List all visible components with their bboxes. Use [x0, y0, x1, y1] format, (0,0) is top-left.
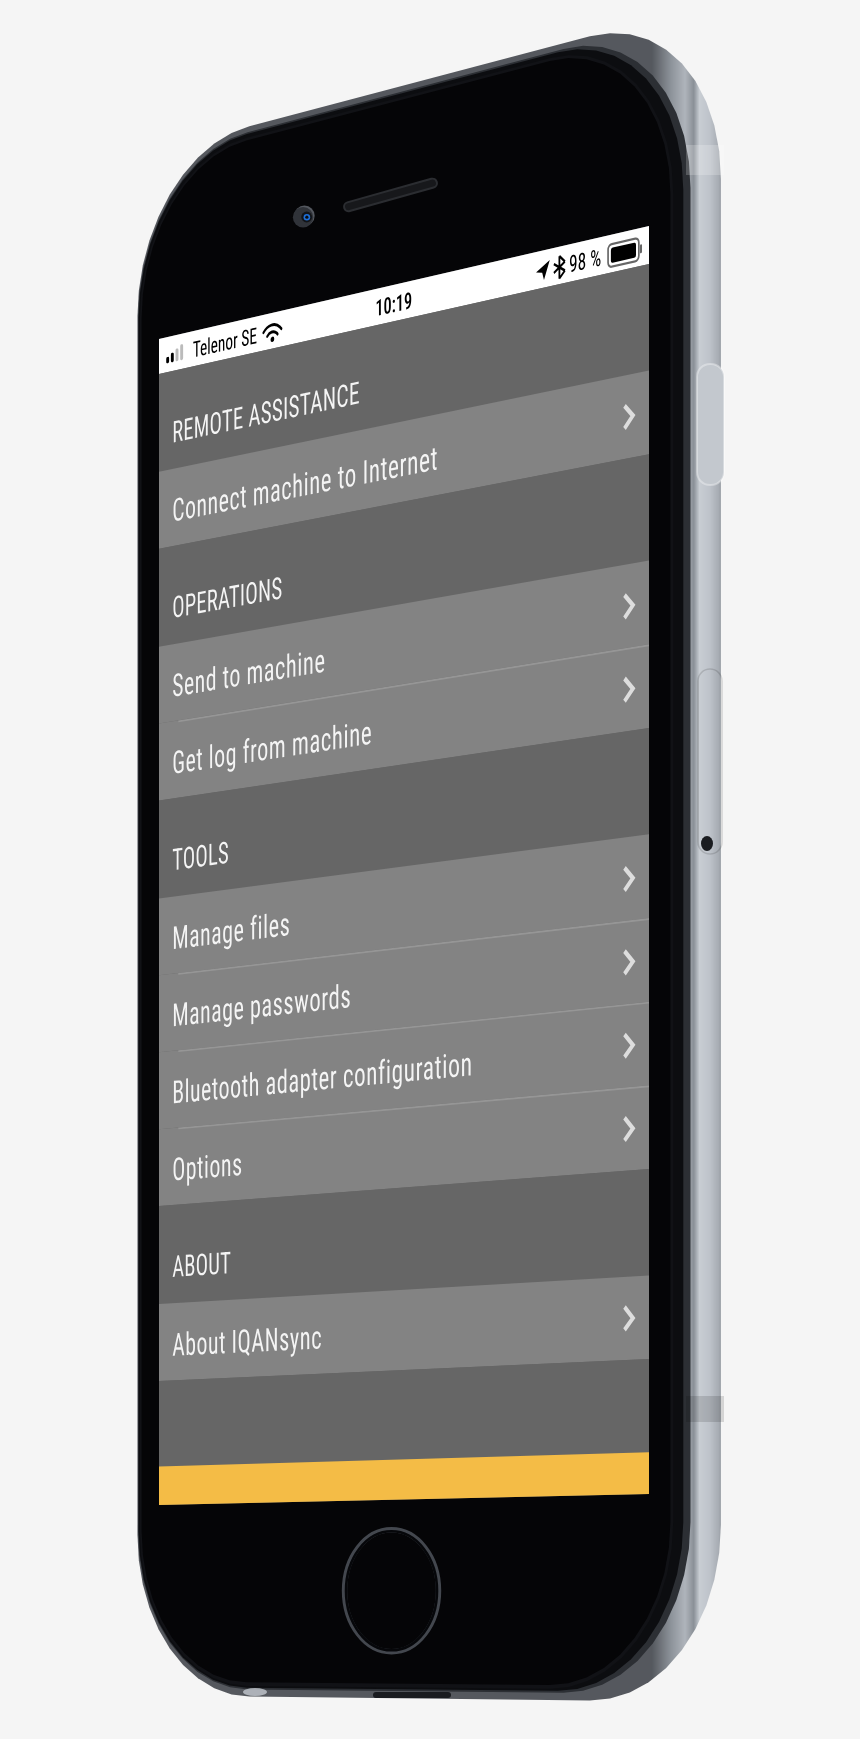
- staticText: Bluetooth adapter configuration: [11, 421, 248, 442]
- staticText: Manage passwords: [11, 377, 155, 398]
- button[interactable]: About IQANsync: [0, 552, 375, 596]
- button[interactable]: ABOUT: [0, 496, 375, 552]
- button[interactable]: Manage files: [0, 320, 375, 364]
- button[interactable]: Options: [0, 452, 375, 496]
- button[interactable]: Get log from machine: [0, 220, 375, 264]
- staticText: Get log from machine: [11, 233, 171, 254]
- button[interactable]: Send to machine: [0, 176, 375, 220]
- button[interactable]: TOOLS: [0, 264, 375, 320]
- button[interactable]: Manage passwords: [0, 364, 375, 408]
- button[interactable]: Connect machine to Internet: [0, 76, 375, 120]
- button[interactable]: OPERATIONS: [0, 120, 375, 176]
- button[interactable]: Bluetooth adapter configuration: [0, 408, 375, 452]
